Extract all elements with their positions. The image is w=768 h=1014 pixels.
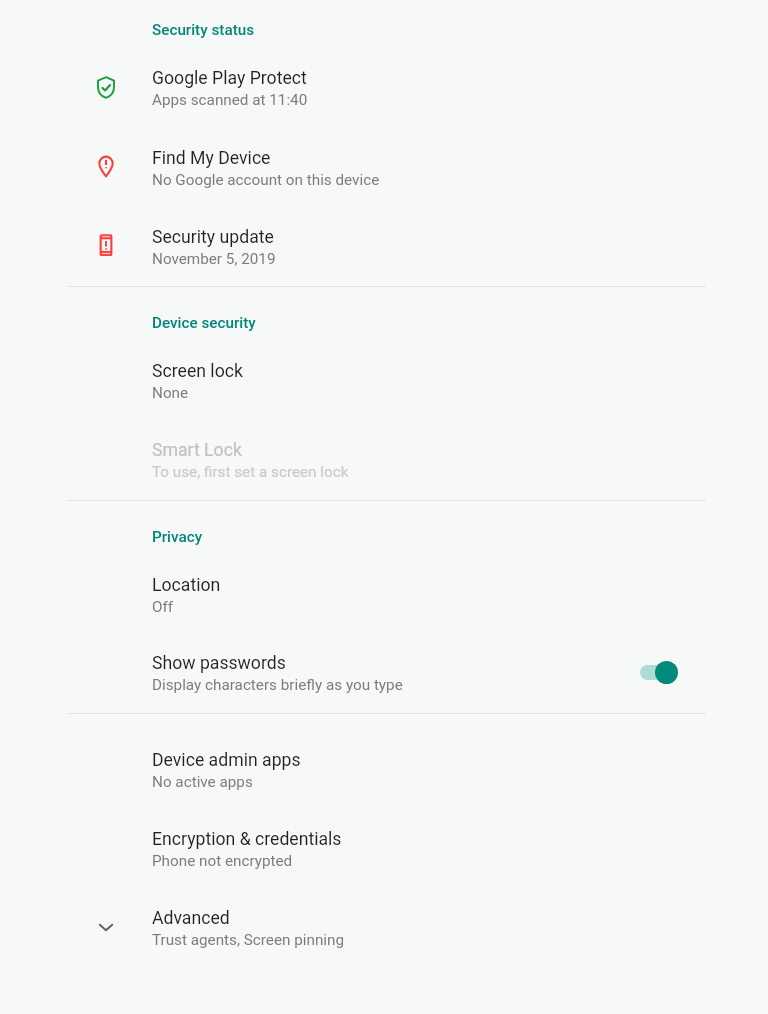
other: Security update (94, 233, 118, 257)
button[interactable]: Security status (148, 16, 251, 44)
staticText: Find My Device (152, 148, 271, 169)
staticText: Device security (152, 314, 256, 332)
staticText: Show passwords (152, 653, 286, 674)
staticText: November 5, 2019 (152, 250, 276, 268)
button[interactable]: Expand advanced settings (0, 895, 768, 957)
staticText: To use, first set a screen lock (152, 463, 349, 481)
staticText: Smart Lock (152, 440, 242, 461)
staticText: Location (152, 575, 221, 596)
button[interactable]: Security update (0, 214, 768, 276)
staticText: Encryption & credentials (152, 829, 342, 850)
other: Google Play Protect (94, 75, 118, 99)
button[interactable]: Smart Lock (0, 427, 768, 489)
button[interactable]: Show passwords (0, 640, 768, 702)
staticText: No Google account on this device (152, 171, 380, 189)
staticText: Security update (152, 227, 274, 248)
button[interactable]: Location (0, 562, 768, 624)
button[interactable]: Device security (148, 309, 252, 337)
staticText: Privacy (152, 528, 203, 546)
staticText: Google Play Protect (152, 68, 307, 89)
button[interactable]: Privacy (148, 523, 199, 551)
staticText: Trust agents, Screen pinning (152, 931, 345, 949)
button[interactable]: Show passwords, on (632, 649, 690, 697)
staticText: Security status (152, 21, 255, 39)
staticText: None (152, 384, 189, 402)
staticText: Screen lock (152, 361, 243, 382)
staticText: Display characters briefly as you type (152, 676, 403, 694)
staticText: Advanced (152, 908, 230, 929)
staticText: No active apps (152, 773, 253, 791)
button[interactable]: Find My Device (0, 135, 768, 197)
other: Expand advanced settings (94, 915, 118, 939)
staticText: Phone not encrypted (152, 852, 293, 870)
staticText: Off (152, 598, 174, 616)
button[interactable]: Device admin apps (0, 737, 768, 799)
other: Find My Device (94, 154, 118, 178)
button[interactable]: Encryption & credentials (0, 816, 768, 878)
button[interactable]: Screen lock (0, 348, 768, 410)
staticText: Device admin apps (152, 750, 301, 771)
button[interactable]: Google Play Protect (0, 55, 768, 117)
staticText: Apps scanned at 11:40 (152, 91, 308, 109)
